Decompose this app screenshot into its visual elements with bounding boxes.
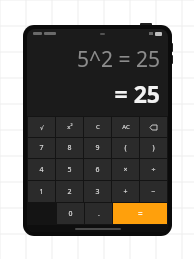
staticText: ( bbox=[124, 143, 127, 153]
staticText: 8 bbox=[67, 143, 72, 153]
button[interactable]: . bbox=[85, 203, 112, 224]
staticText: 6 bbox=[95, 165, 100, 175]
button[interactable]: × bbox=[112, 159, 139, 180]
button[interactable]: 7 bbox=[28, 138, 55, 158]
button[interactable]: ) bbox=[140, 138, 167, 158]
staticText: C bbox=[96, 123, 100, 131]
button[interactable]: + bbox=[112, 181, 139, 202]
button[interactable]: 1 bbox=[28, 181, 55, 202]
button[interactable]: 9 bbox=[84, 138, 111, 158]
button[interactable]: C bbox=[84, 117, 111, 137]
staticText: 5^2 = 25 bbox=[77, 45, 160, 74]
staticText: − bbox=[151, 187, 156, 197]
staticText: = 25 bbox=[114, 78, 160, 109]
staticText: 9 bbox=[95, 143, 100, 153]
button[interactable]: 8 bbox=[56, 138, 83, 158]
button[interactable]: √ bbox=[28, 117, 55, 137]
staticText: x² bbox=[67, 123, 73, 131]
button[interactable]: 5 bbox=[56, 159, 83, 180]
button[interactable]: AC bbox=[112, 117, 139, 137]
button[interactable]: − bbox=[140, 181, 167, 202]
button[interactable]: ( bbox=[112, 138, 139, 158]
staticText: . bbox=[98, 209, 100, 219]
staticText: AC bbox=[122, 123, 130, 131]
button[interactable]: 3 bbox=[84, 181, 111, 202]
staticText: 1 bbox=[39, 187, 44, 197]
button[interactable]: x² bbox=[56, 117, 83, 137]
staticText: 7 bbox=[39, 143, 44, 153]
staticText: 5 bbox=[67, 165, 72, 175]
staticText: × bbox=[123, 165, 128, 175]
button[interactable]: 4 bbox=[28, 159, 55, 180]
button[interactable]: ÷ bbox=[140, 159, 167, 180]
button[interactable]: 2 bbox=[56, 181, 83, 202]
staticText: 3 bbox=[95, 187, 100, 197]
staticText: √ bbox=[40, 124, 44, 131]
staticText: ) bbox=[152, 143, 155, 153]
button[interactable] bbox=[140, 117, 167, 137]
button[interactable]: = bbox=[113, 203, 167, 224]
staticText: ÷ bbox=[151, 165, 156, 175]
button[interactable]: 6 bbox=[84, 159, 111, 180]
staticText: 2 bbox=[67, 187, 72, 197]
staticText: + bbox=[123, 187, 128, 197]
staticText: 4 bbox=[39, 165, 44, 175]
button[interactable]: 0 bbox=[57, 203, 84, 224]
staticText: = bbox=[138, 208, 143, 219]
staticText: 0 bbox=[68, 209, 73, 219]
